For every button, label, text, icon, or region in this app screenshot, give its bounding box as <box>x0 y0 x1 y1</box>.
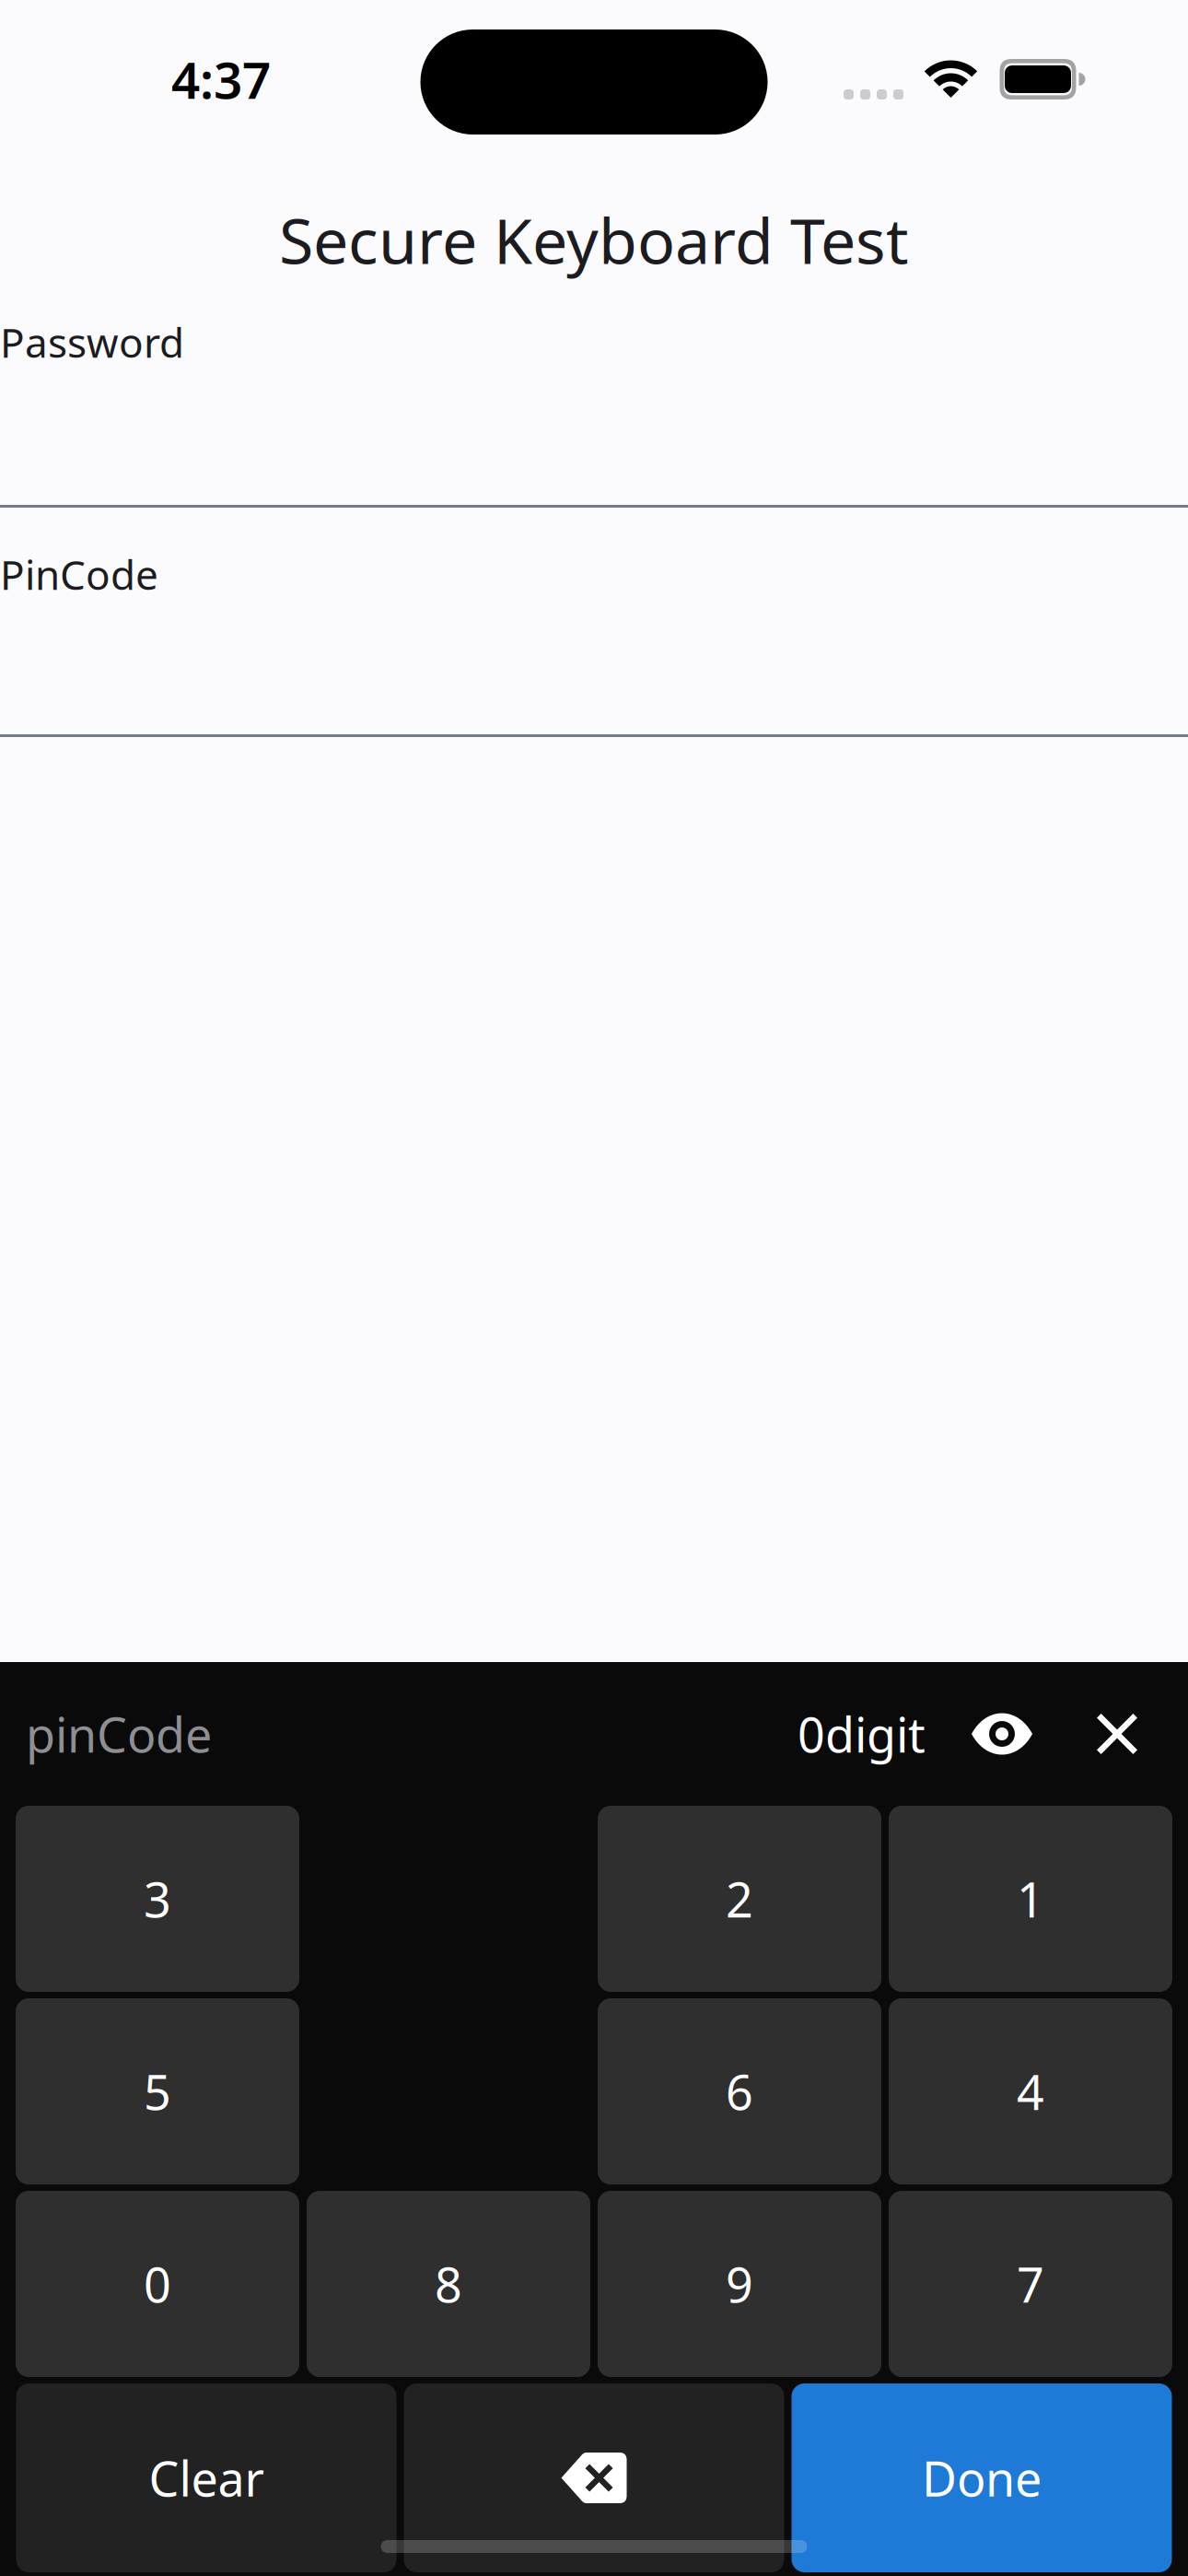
staticText: Clear <box>149 2446 264 2510</box>
staticText: 4:37 <box>171 46 271 113</box>
staticText: 2 <box>726 1867 753 1931</box>
button[interactable]: 7 <box>889 2191 1172 2377</box>
staticText: 0digit <box>798 1702 926 1766</box>
staticText: Password <box>0 315 184 369</box>
staticText: PinCode <box>0 547 158 601</box>
button[interactable]: 6 <box>598 1998 881 2184</box>
staticText: Secure Keyboard Test <box>279 198 909 281</box>
staticText: 3 <box>144 1867 171 1931</box>
button[interactable]: Done <box>792 2383 1172 2572</box>
button[interactable]: 3 <box>16 1806 299 1992</box>
button[interactable]: PinCode <box>0 508 1188 734</box>
button[interactable]: Delete <box>404 2383 784 2572</box>
staticText: 4 <box>1017 2060 1044 2123</box>
button[interactable]: Password <box>0 315 1188 505</box>
button[interactable]: Clear <box>16 2383 396 2572</box>
button[interactable]: 4 <box>889 1998 1172 2184</box>
button[interactable]: 8 <box>307 2191 590 2377</box>
staticText: 0 <box>144 2252 171 2316</box>
button[interactable]: 0 <box>16 2191 299 2377</box>
button[interactable]: Close keyboard <box>1080 1697 1154 1771</box>
button[interactable]: Show pin code <box>965 1697 1039 1771</box>
staticText: 6 <box>726 2060 753 2123</box>
button[interactable]: 1 <box>889 1806 1172 1992</box>
button[interactable]: 2 <box>598 1806 881 1992</box>
staticText: 9 <box>726 2252 753 2316</box>
button[interactable]: 5 <box>16 1998 299 2184</box>
staticText: 5 <box>144 2060 171 2123</box>
staticText: pinCode <box>26 1702 212 1766</box>
staticText: 1 <box>1017 1867 1044 1931</box>
staticText: Done <box>922 2446 1042 2510</box>
staticText: 7 <box>1017 2252 1044 2316</box>
button[interactable]: 9 <box>598 2191 881 2377</box>
staticText: 8 <box>435 2252 462 2316</box>
